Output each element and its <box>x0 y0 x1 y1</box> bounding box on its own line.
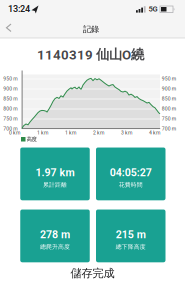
staticText: 2 km <box>93 130 104 136</box>
staticText: 1140319 仙山O繞 <box>37 46 144 63</box>
staticText: 5G <box>148 4 157 13</box>
staticText: 700 m <box>162 126 176 132</box>
button[interactable]: Back <box>1 20 17 36</box>
staticText: 278 m <box>40 228 70 241</box>
staticText: 儲存完成 <box>70 266 114 280</box>
staticText: 900 m <box>3 86 17 92</box>
staticText: 0 km <box>9 130 20 136</box>
staticText: 850 m <box>3 96 17 102</box>
staticText: 04:05:27 <box>110 166 152 179</box>
staticText: 1 km <box>65 130 76 136</box>
staticText: 750 m <box>162 116 176 122</box>
staticText: 850 m <box>162 96 176 102</box>
staticText: 750 m <box>3 116 17 122</box>
staticText: 總爬升高度 <box>40 243 70 250</box>
staticText: 1 km <box>37 130 48 136</box>
staticText: 950 m <box>3 76 17 82</box>
staticText: 800 m <box>3 106 17 112</box>
staticText: 總下降高度 <box>116 243 146 250</box>
staticText: 800 m <box>162 106 176 112</box>
staticText: 4 km <box>149 130 160 136</box>
staticText: 700 m <box>3 126 17 132</box>
staticText: 13:24 <box>8 4 30 14</box>
staticText: 950 m <box>162 76 176 82</box>
staticText: 3 km <box>121 130 132 136</box>
staticText: 1.97 km <box>35 166 74 179</box>
staticText: 高度 <box>26 136 36 143</box>
staticText: 900 m <box>162 86 176 92</box>
staticText: 花費時間 <box>119 181 143 188</box>
staticText: 215 m <box>116 228 146 241</box>
button[interactable]: 儲存完成 <box>0 263 185 283</box>
staticText: 記錄 <box>83 24 99 34</box>
staticText: 累計距離 <box>43 181 67 188</box>
